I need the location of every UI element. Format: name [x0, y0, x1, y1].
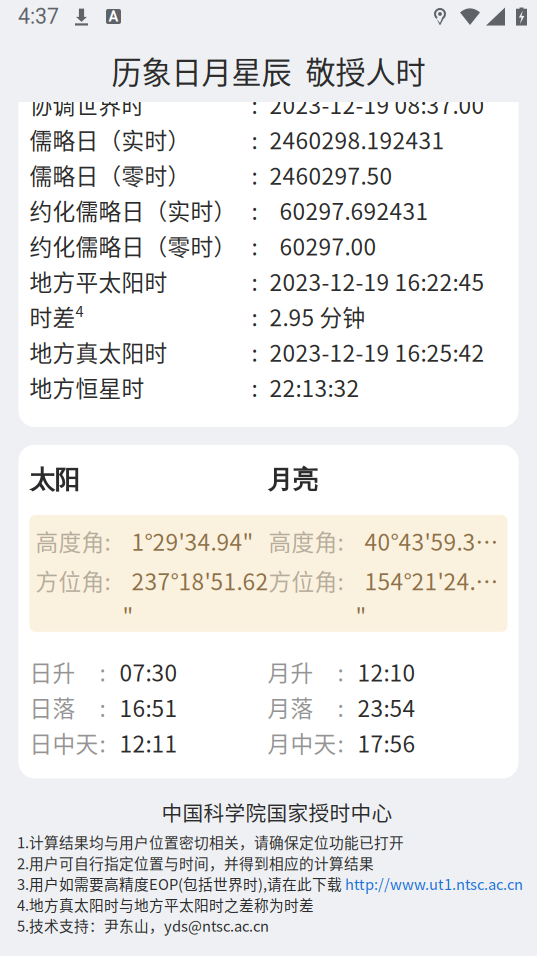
- staticText: 方位角:: [35, 564, 110, 597]
- staticText: 2023-12-19 16:22:45: [269, 265, 484, 297]
- staticText: 儒略日（零时）: [29, 158, 190, 191]
- staticText: :: [251, 158, 257, 191]
- staticText: 60297.00: [269, 229, 376, 262]
- staticText: :: [251, 371, 257, 404]
- staticText: 2023-12-19 16:25:42: [269, 335, 484, 368]
- staticText: 12:10: [357, 655, 415, 688]
- staticText: 地方真太阳时: [29, 335, 167, 368]
- staticText: 40°43'59.37": [364, 524, 498, 557]
- staticText: 协调世界时: [29, 88, 144, 120]
- staticText: :: [251, 335, 257, 368]
- staticText: :: [337, 726, 343, 759]
- staticText: 高度角:: [35, 524, 110, 557]
- staticText: :: [337, 691, 343, 723]
- staticText: 3.用户如需要高精度EOP(包括世界时),请在此下载: [17, 873, 345, 894]
- staticText: 4:37: [18, 4, 59, 29]
- staticText: 日升: [29, 655, 75, 688]
- staticText: 日中天: [29, 726, 98, 759]
- staticText: 约化儒略日（零时）: [29, 229, 236, 262]
- staticText: 月中天: [267, 726, 336, 759]
- staticText: 月落: [267, 691, 313, 723]
- staticText: 月亮: [267, 464, 317, 496]
- staticText: 23:54: [357, 691, 415, 723]
- staticText: 方位角:: [268, 564, 343, 597]
- staticText: :: [251, 229, 257, 262]
- staticText: 07:30: [119, 655, 177, 688]
- staticText: :: [99, 655, 105, 688]
- button[interactable]: http://www.ut1.ntsc.ac.cn: [345, 873, 523, 894]
- staticText: 17:56: [357, 726, 415, 759]
- staticText: 1°29'34.94": [131, 524, 253, 557]
- staticText: 2023-12-19 08:37.00: [269, 88, 484, 120]
- staticText: 2460297.50: [269, 158, 392, 191]
- staticText: 5.技术支持：尹东山，yds@ntsc.ac.cn: [17, 915, 269, 936]
- staticText: http://www.ut1.ntsc.ac.cn: [345, 873, 523, 894]
- staticText: 154°21'24.80: [364, 564, 498, 597]
- staticText: 地方平太阳时: [29, 265, 167, 297]
- staticText: 2460298.192431: [269, 123, 444, 156]
- staticText: 237°18'51.62: [131, 564, 268, 597]
- staticText: :: [251, 123, 257, 156]
- staticText: ": [355, 598, 366, 631]
- staticText: A: [108, 8, 118, 25]
- staticText: 60297.692431: [269, 194, 428, 227]
- staticText: 儒略日（实时）: [29, 123, 190, 156]
- staticText: 太阳: [29, 464, 79, 496]
- staticText: 12:11: [119, 726, 177, 759]
- staticText: :: [251, 88, 257, 120]
- staticText: 中国科学院国家授时中心: [161, 797, 392, 827]
- staticText: 时差: [29, 300, 75, 333]
- staticText: 历象日月星辰 敬授人时: [111, 49, 425, 92]
- staticText: 4: [75, 300, 83, 321]
- staticText: 约化儒略日（实时）: [29, 194, 236, 227]
- staticText: 地方恒星时: [29, 371, 144, 404]
- staticText: :: [99, 726, 105, 759]
- staticText: 16:51: [119, 691, 177, 723]
- staticText: :: [251, 194, 257, 227]
- staticText: :: [251, 265, 257, 297]
- staticText: 4.地方真太阳时与地方平太阳时之差称为时差: [17, 894, 314, 915]
- staticText: 2.用户可自行指定位置与时间，并得到相应的计算结果: [17, 852, 374, 873]
- staticText: ": [122, 598, 133, 631]
- staticText: :: [337, 655, 343, 688]
- staticText: :: [99, 691, 105, 723]
- staticText: 高度角:: [268, 524, 343, 557]
- staticText: 22:13:32: [269, 371, 359, 404]
- staticText: 月升: [267, 655, 313, 688]
- staticText: :: [251, 300, 257, 333]
- staticText: 日落: [29, 691, 75, 723]
- staticText: 1.计算结果均与用户位置密切相关，请确保定位功能已打开: [17, 831, 404, 852]
- staticText: 2.95 分钟: [269, 300, 365, 333]
